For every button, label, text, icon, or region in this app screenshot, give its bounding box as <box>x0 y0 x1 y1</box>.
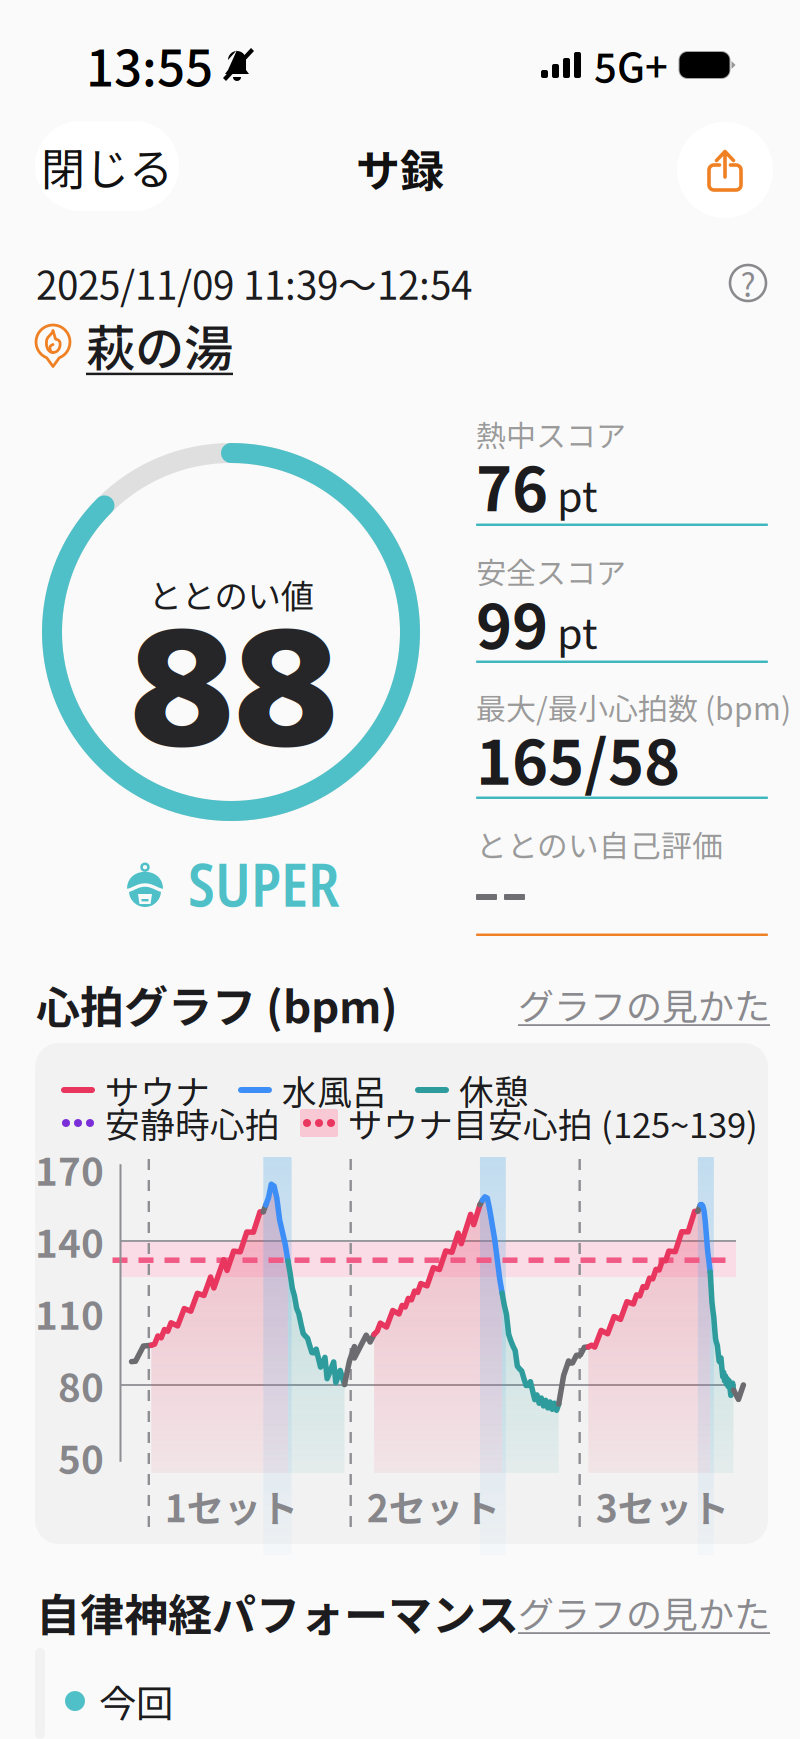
staticText: 1セット <box>165 1479 298 1533</box>
staticText: 水風呂 <box>282 1065 387 1115</box>
staticText: 休憩 <box>459 1065 529 1115</box>
staticText: 110 <box>35 1285 104 1341</box>
button[interactable]: 閉じる <box>35 121 179 211</box>
button[interactable]: Share <box>677 122 773 218</box>
button[interactable]: グラフの見かた <box>518 978 770 1030</box>
staticText: 80 <box>58 1357 104 1413</box>
staticText: 閉じる <box>41 134 173 198</box>
staticText: pt <box>557 601 598 661</box>
button[interactable]: グラフの見かた <box>518 1586 770 1638</box>
staticText: サウナ目安心拍 (125~139) <box>348 1098 758 1148</box>
staticText: 5G+ <box>594 36 668 94</box>
staticText: 2セット <box>367 1479 500 1533</box>
staticText: グラフの見かた <box>518 1586 770 1638</box>
staticText: 心拍グラフ (bpm) <box>36 972 398 1036</box>
staticText: 安全スコア <box>476 549 626 593</box>
staticText: 今回 <box>99 1674 173 1728</box>
staticText: 140 <box>35 1213 104 1269</box>
staticText: サウナ <box>105 1065 210 1115</box>
staticText: pt <box>557 464 598 524</box>
staticText: グラフの見かた <box>518 978 770 1030</box>
staticText: 最大/最小心拍数 (bpm) <box>476 685 791 729</box>
staticText: 熱中スコア <box>476 412 626 456</box>
staticText: 165/58 <box>476 714 680 802</box>
staticText: 50 <box>58 1429 104 1485</box>
staticText: 安静時心拍 <box>105 1098 280 1148</box>
button[interactable]: 萩の湯 <box>32 320 452 370</box>
staticText: 76 <box>476 441 548 529</box>
staticText: ととのい自己評価 <box>476 822 723 866</box>
staticText: 萩の湯 <box>86 309 233 381</box>
staticText: ととのい値 <box>148 570 313 618</box>
staticText: 88 <box>130 576 338 796</box>
staticText: 99 <box>476 578 548 666</box>
staticText: 3セット <box>596 1479 729 1533</box>
button[interactable]: Help <box>726 261 770 305</box>
staticText: 2025/11/09 11:39〜12:54 <box>36 255 472 311</box>
staticText: ? <box>740 260 755 306</box>
staticText: 自律神経パフォーマンス <box>36 1580 519 1644</box>
staticText: SUPER <box>188 844 340 924</box>
staticText: 170 <box>35 1141 104 1197</box>
staticText: 13:55 <box>86 29 213 101</box>
staticText: サ録 <box>356 136 444 200</box>
